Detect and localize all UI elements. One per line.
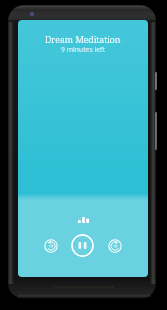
staticText: 9 minutes left [61, 45, 105, 54]
button[interactable]: Forward 10 seconds [104, 235, 125, 256]
button[interactable]: Replay 10 seconds [40, 235, 61, 256]
staticText: Dream Meditation [45, 33, 121, 45]
button[interactable]: Pause [71, 234, 94, 257]
